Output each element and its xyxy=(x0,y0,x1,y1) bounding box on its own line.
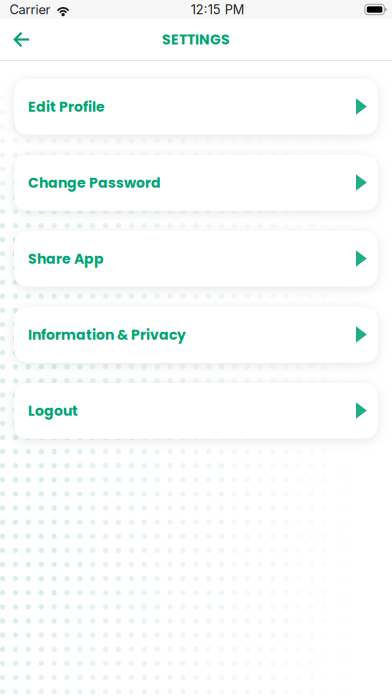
button[interactable]: Back xyxy=(0,19,44,60)
staticText: Share App xyxy=(28,249,104,269)
staticText: 12:15 PM xyxy=(191,2,245,17)
button[interactable]: Logout xyxy=(14,383,378,439)
button[interactable]: Information & Privacy xyxy=(14,307,378,363)
staticText: Carrier xyxy=(9,2,50,17)
button[interactable]: Share App xyxy=(14,231,378,287)
staticText: SETTINGS xyxy=(162,30,230,49)
button[interactable]: Change Password xyxy=(14,155,378,211)
staticText: Change Password xyxy=(28,173,161,193)
staticText: Information & Privacy xyxy=(28,325,186,345)
staticText: Logout xyxy=(28,401,78,421)
button[interactable]: Edit Profile xyxy=(14,79,378,135)
staticText: Edit Profile xyxy=(28,97,105,117)
